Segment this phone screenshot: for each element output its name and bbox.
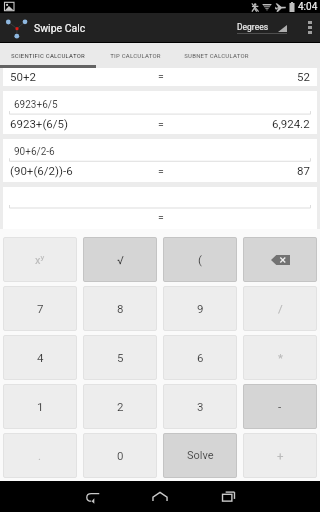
staticText: / (278, 302, 283, 315)
staticText: = (158, 118, 164, 130)
button[interactable]: 8 (83, 286, 157, 331)
button[interactable]: √ (83, 237, 157, 282)
button[interactable]: 2 (83, 384, 157, 429)
button[interactable]: More options (300, 13, 320, 42)
staticText: 6923+6/5 (14, 99, 58, 111)
button[interactable]: * (243, 335, 317, 380)
staticText: = (158, 165, 164, 177)
staticText: 6923+(6/5) (10, 117, 68, 130)
staticText: xy (35, 253, 45, 267)
staticText: Degrees (237, 22, 269, 32)
staticText: 8 (117, 302, 124, 315)
staticText: 6 (197, 351, 204, 364)
staticText: 5 (117, 351, 124, 364)
button[interactable]: 90+6/2-6 (3, 139, 317, 182)
staticText: √ (117, 253, 124, 266)
button[interactable]: 7 (3, 286, 77, 331)
staticText: 90+6/2-6 (14, 146, 55, 158)
button[interactable]: Home (126, 481, 194, 512)
staticText: * (278, 351, 283, 364)
staticText: 52 (297, 70, 310, 83)
staticText: 2 (117, 400, 124, 413)
staticText: - (278, 400, 282, 413)
button[interactable]: 3 (163, 384, 237, 429)
staticText: 50+2 (10, 70, 36, 83)
button[interactable]: 6923+6/5 (3, 91, 317, 134)
button[interactable]: Back (58, 481, 126, 512)
button[interactable]: + (243, 433, 317, 478)
staticText: + (277, 449, 284, 462)
staticText: TIP CALCULATOR (110, 52, 161, 59)
button[interactable]: SCIENTIFIC CALCULATOR (0, 43, 96, 68)
staticText: (90+(6/2))-6 (10, 164, 73, 177)
button[interactable]: / (243, 286, 317, 331)
staticText: SUBNET CALCULATOR (184, 52, 249, 59)
button[interactable]: Recent apps (194, 481, 262, 512)
staticText: 4:04 (298, 1, 318, 13)
button[interactable]: 6 (163, 335, 237, 380)
staticText: ( (198, 253, 202, 266)
button[interactable]: - (243, 384, 317, 429)
button[interactable]: 5 (83, 335, 157, 380)
staticText: SCIENTIFIC CALCULATOR (11, 52, 85, 59)
staticText: 4 (37, 351, 44, 364)
staticText: 87 (297, 164, 310, 177)
button[interactable]: 1 (3, 384, 77, 429)
button[interactable]: TIP CALCULATOR (96, 43, 175, 68)
button[interactable]: Backspace (243, 237, 317, 282)
button[interactable]: Angle unit Degrees (226, 13, 300, 42)
button[interactable]: 4 (3, 335, 77, 380)
button[interactable]: xy (3, 237, 77, 282)
staticText: 9 (197, 302, 204, 315)
staticText: 0 (117, 449, 124, 462)
button[interactable]: Solve (163, 433, 237, 478)
staticText: 7 (37, 302, 44, 315)
staticText: Solve (187, 449, 214, 462)
button[interactable]: 9 (163, 286, 237, 331)
staticText: = (158, 70, 164, 82)
button[interactable]: = (3, 187, 317, 229)
button[interactable]: ( (163, 237, 237, 282)
staticText: . (38, 449, 42, 462)
staticText: = (158, 211, 164, 223)
button[interactable]: SUBNET CALCULATOR (175, 43, 258, 68)
button[interactable]: 50+2 (3, 68, 317, 86)
staticText: 3 (197, 400, 204, 413)
staticText: 1 (37, 400, 44, 413)
staticText: 6,924.2 (272, 117, 310, 130)
button[interactable]: Swipe Calc (0, 13, 34, 42)
button[interactable]: 0 (83, 433, 157, 478)
staticText: Swipe Calc (34, 22, 86, 34)
